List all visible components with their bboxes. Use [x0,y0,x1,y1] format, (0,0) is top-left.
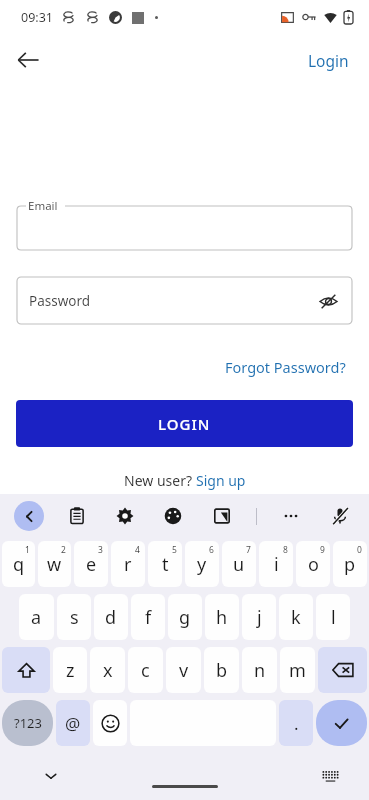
button[interactable]: k [279,594,313,640]
button[interactable]: LOGIN [16,400,353,447]
button[interactable] [17,206,352,250]
staticText: 8 [283,544,288,556]
button[interactable]: y [185,541,219,587]
button[interactable]: Enter [316,700,367,746]
staticText: Login [308,50,349,71]
staticText: f [145,605,152,630]
staticText: Sign up [196,471,246,490]
button[interactable]: @ [56,700,90,746]
staticText: n [254,658,266,683]
button[interactable]: g [168,594,202,640]
staticText: r [124,552,132,577]
button[interactable]: m [280,647,315,693]
staticText: k [291,605,301,630]
button[interactable]: Themes [158,501,188,531]
button[interactable]: Previous [14,501,44,531]
button[interactable]: More [276,501,306,531]
button[interactable]: v [166,647,201,693]
button[interactable]: w [38,541,71,587]
button[interactable]: x [90,647,125,693]
staticText: m [289,658,306,683]
staticText: New user? [124,471,196,490]
button[interactable]: Emoji [93,700,127,746]
button[interactable]: o [296,541,330,587]
button[interactable]: Switch keyboard [315,761,345,791]
staticText: 3 [98,544,103,556]
button[interactable]: Forgot Password? [221,354,350,380]
staticText: l [331,605,336,630]
staticText: Password [29,292,91,310]
button[interactable]: d [94,594,128,640]
staticText: Forgot Password? [225,357,346,377]
button[interactable]: Clipboard [62,501,92,531]
staticText: 6 [209,544,214,556]
staticText: a [31,605,42,630]
staticText: j [257,605,262,630]
staticText: c [141,658,150,683]
staticText: . [294,712,299,735]
button[interactable]: r [111,541,145,587]
button[interactable]: e [74,541,108,587]
button[interactable]: Backspace [318,647,367,693]
staticText: o [308,552,319,577]
button[interactable]: Hide keyboard [36,761,66,791]
button[interactable]: f [131,594,165,640]
button[interactable]: . [279,700,313,746]
staticText: 09:31 [21,9,53,26]
staticText: 9 [320,544,325,556]
staticText: 0 [357,544,362,556]
staticText: p [344,552,356,577]
button[interactable]: a [19,594,54,640]
button[interactable]: Back [6,38,50,82]
button[interactable]: Voice input off [325,501,355,531]
button[interactable]: Password [17,277,352,324]
staticText: 4 [135,544,140,556]
staticText: d [105,605,117,630]
staticText: z [66,658,75,683]
staticText: e [86,552,97,577]
staticText: t [162,552,169,577]
button[interactable]: u [222,541,256,587]
staticText: Email [28,198,58,214]
button[interactable]: ?123 [2,700,53,746]
button[interactable]: t [148,541,182,587]
button[interactable]: l [316,594,350,640]
button[interactable]: c [128,647,163,693]
button[interactable]: q [2,541,35,587]
staticText: @ [65,712,81,735]
staticText: b [216,658,228,683]
button[interactable]: h [205,594,239,640]
button[interactable]: b [204,647,239,693]
button[interactable]: j [242,594,276,640]
staticText: x [103,658,113,683]
staticText: 5 [172,544,177,556]
staticText: h [216,605,228,630]
staticText: i [274,552,279,577]
button[interactable]: s [57,594,91,640]
button[interactable]: n [242,647,277,693]
staticText: s [70,605,79,630]
button[interactable]: p [333,541,367,587]
button[interactable]: Shift [2,647,50,693]
staticText: v [179,658,189,683]
staticText: LOGIN [158,414,211,434]
button[interactable]: i [259,541,293,587]
button[interactable]: Show password [314,287,342,315]
staticText: 1 [25,544,30,556]
button[interactable]: z [53,647,87,693]
button[interactable]: Stickers [207,501,237,531]
staticText: g [179,605,191,630]
button[interactable]: Settings [110,501,140,531]
staticText: y [197,552,207,577]
button[interactable]: Login [300,44,357,77]
staticText: w [47,552,62,577]
staticText: 7 [246,544,251,556]
button[interactable]: Sign up [196,471,246,490]
staticText: u [233,552,245,577]
staticText: q [13,552,25,577]
staticText: ?123 [14,714,42,732]
staticText: 2 [61,544,66,556]
